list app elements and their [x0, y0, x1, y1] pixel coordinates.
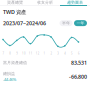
- staticText: 當月資產總值: [3, 60, 27, 65]
- staticText: 3: [57, 52, 59, 55]
- staticText: 總損益: [3, 71, 15, 76]
- staticText: 8: [9, 52, 11, 55]
- staticText: 2023/07~2024/06: [3, 20, 46, 27]
- staticText: 2: [50, 52, 52, 55]
- staticText: -44.46%: [3, 77, 16, 82]
- button[interactable]: 半年: [59, 20, 72, 26]
- staticText: 收支分析: [37, 0, 53, 5]
- button[interactable]: 一年: [74, 20, 87, 26]
- staticText: -66,800: [69, 73, 87, 80]
- staticText: TWD 資產: [3, 8, 26, 16]
- staticText: 12: [36, 52, 40, 55]
- staticText: 趨勢圖表: [67, 0, 83, 5]
- staticText: 4: [64, 52, 66, 55]
- staticText: 半年: [62, 21, 70, 26]
- staticText: 資產總覽: [7, 0, 23, 5]
- staticText: 10: [22, 52, 26, 55]
- staticText: 1: [44, 52, 46, 55]
- staticText: 5: [71, 52, 73, 55]
- staticText: 7: [2, 52, 4, 55]
- staticText: 6: [78, 52, 80, 55]
- staticText: 一年: [76, 21, 84, 26]
- button[interactable]: 資產總覽: [0, 0, 30, 5]
- button[interactable]: 收支分析: [30, 0, 60, 5]
- staticText: 83,531: [71, 59, 87, 66]
- staticText: 9: [16, 52, 18, 55]
- staticText: 11: [29, 52, 33, 55]
- button[interactable]: 趨勢圖表: [60, 0, 90, 5]
